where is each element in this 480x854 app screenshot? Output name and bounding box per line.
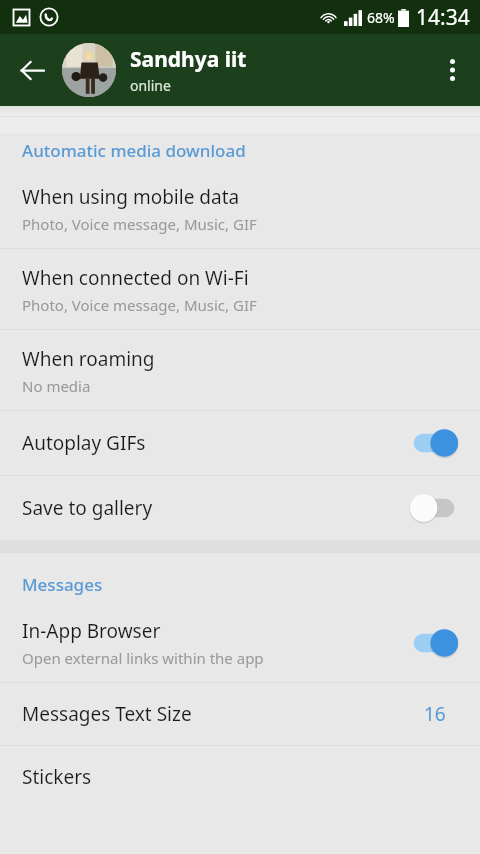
button[interactable]: Stickers <box>0 746 480 808</box>
staticText: Photo, Voice message, Music, GIF <box>22 295 257 315</box>
button[interactable]: Toggle on <box>408 628 460 658</box>
button[interactable]: When roaming <box>0 330 480 410</box>
button[interactable]: More options <box>428 46 476 94</box>
button[interactable]: Autoplay GIFs <box>0 411 480 475</box>
staticText: Stickers <box>22 764 92 790</box>
staticText: online <box>130 76 171 95</box>
staticText: Sandhya iit <box>130 45 247 74</box>
staticText: When roaming <box>22 346 155 372</box>
staticText: 16 <box>424 701 454 727</box>
staticText: Autoplay GIFs <box>22 430 408 456</box>
staticText: When using mobile data <box>22 184 240 210</box>
button[interactable]: Profile photo <box>62 43 116 97</box>
button[interactable]: When using mobile data <box>0 174 480 248</box>
staticText: Messages <box>22 573 103 596</box>
staticText: 68% <box>367 8 395 27</box>
button[interactable]: Sandhya iit <box>130 41 428 99</box>
staticText: 14:34 <box>416 3 470 32</box>
staticText: Photo, Voice message, Music, GIF <box>22 214 257 234</box>
staticText: Open external links within the app <box>22 648 264 668</box>
staticText: Automatic media download <box>22 139 246 162</box>
button[interactable]: Save to gallery <box>0 476 480 540</box>
button[interactable]: When connected on Wi-Fi <box>0 249 480 329</box>
button[interactable]: In-App Browser <box>0 608 480 682</box>
button[interactable]: Messages Text Size <box>0 683 480 745</box>
staticText: In-App Browser <box>22 618 161 644</box>
button[interactable]: Toggle off <box>408 493 460 523</box>
staticText: Save to gallery <box>22 495 408 521</box>
button[interactable]: Toggle on <box>408 428 460 458</box>
staticText: Messages Text Size <box>22 701 424 727</box>
staticText: No media <box>22 376 91 396</box>
button[interactable]: Back <box>6 44 58 96</box>
staticText: When connected on Wi-Fi <box>22 265 249 291</box>
